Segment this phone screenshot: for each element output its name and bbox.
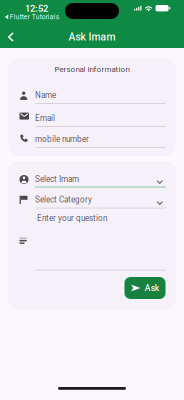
staticText: Ask Imam xyxy=(68,31,115,43)
staticText: 12:52 xyxy=(25,3,48,14)
staticText: Name xyxy=(35,90,56,100)
staticText: Ask xyxy=(145,283,159,293)
staticText: mobile number xyxy=(35,134,89,144)
staticText: Select Category xyxy=(35,195,92,204)
button[interactable]: Back xyxy=(0,26,22,48)
staticText: Email xyxy=(35,113,55,123)
staticText: Select Imam xyxy=(35,174,79,184)
staticText: Personal Information xyxy=(54,64,129,74)
staticText: Flutter Tutorials xyxy=(10,13,59,21)
button[interactable]: Ask xyxy=(124,277,165,299)
staticText: Enter your question xyxy=(37,213,107,223)
